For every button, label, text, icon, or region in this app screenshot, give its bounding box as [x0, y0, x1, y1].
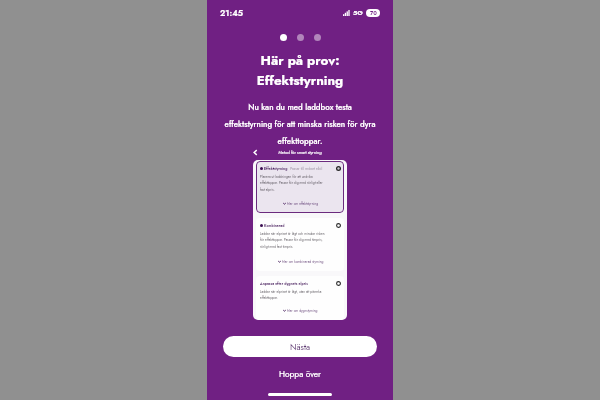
- staticText: Kombinerad: [264, 223, 285, 228]
- staticText: Laddar när elpriset är lågt och minskar …: [260, 231, 325, 249]
- staticText: Nu kan du med laddbox testa effektstyrni…: [215, 101, 385, 147]
- staticText: Planera ut laddningen för att undvika ef…: [260, 174, 323, 192]
- button[interactable]: Tillbaka: [252, 149, 259, 156]
- staticText: Mer om kombinerad styrning: [282, 259, 324, 264]
- staticText: 21:45: [220, 7, 244, 19]
- staticText: Mer om dygnstyrning: [287, 308, 318, 313]
- staticText: Mer om effektstyrning: [287, 201, 319, 206]
- button[interactable]: Mer om dygnstyrning: [260, 308, 341, 313]
- button[interactable]: [280, 34, 287, 41]
- staticText: Här på prov: Effektstyrning: [215, 51, 385, 90]
- button[interactable]: Anpassa efter dygnets elpris: [256, 276, 344, 320]
- button[interactable]: Hoppa över: [207, 367, 393, 381]
- staticText: Laddar när elpriset är lågt, utan att på…: [260, 289, 322, 300]
- staticText: 5G: [353, 8, 363, 18]
- staticText: Nästa: [290, 341, 311, 353]
- button[interactable]: Mer om effektstyrning: [260, 201, 341, 206]
- staticText: Effektstyrning: [264, 166, 288, 171]
- staticText: Hoppa över: [279, 368, 321, 380]
- button[interactable]: Kombinerad: [256, 218, 344, 271]
- staticText: Passar till enbart elbil: [288, 166, 323, 171]
- button[interactable]: Nästa: [223, 336, 377, 357]
- button[interactable]: Effektstyrning: [256, 161, 344, 213]
- staticText: Anpassa efter dygnets elpris: [260, 281, 308, 286]
- button[interactable]: Mer om kombinerad styrning: [260, 259, 341, 264]
- staticText: Metod för smart styrning: [207, 150, 393, 156]
- staticText: 70: [370, 9, 377, 17]
